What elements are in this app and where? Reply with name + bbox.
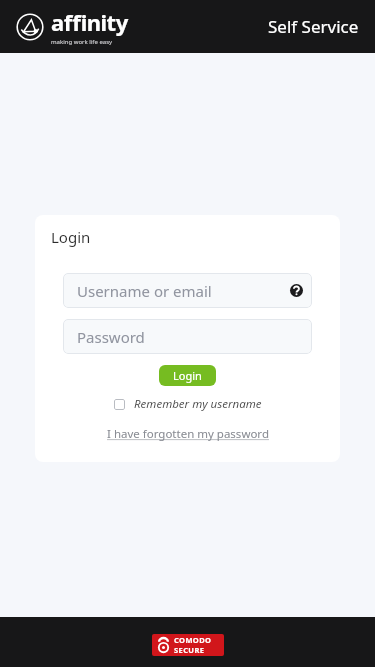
staticText: making work life easy [51, 38, 113, 46]
button[interactable]: Help [290, 284, 303, 297]
button[interactable]: Password [63, 319, 312, 354]
button[interactable]: Affinity home [16, 7, 128, 46]
button[interactable]: Comodo Secure [152, 634, 224, 656]
button[interactable]: Remember my username [114, 396, 262, 412]
staticText: I have forgotten my password [107, 426, 269, 442]
button[interactable]: Login [159, 365, 216, 386]
staticText: affinity [51, 7, 128, 37]
staticText: Remember my username [134, 396, 262, 412]
staticText: Username or email [77, 281, 212, 301]
staticText: Login [51, 227, 91, 247]
staticText: Login [173, 368, 202, 383]
staticText: COMODO [174, 635, 212, 645]
staticText: Password [77, 327, 145, 347]
staticText: Self Service [268, 15, 359, 38]
button[interactable]: Username or email [63, 273, 312, 308]
staticText: SECURE [174, 645, 205, 655]
button[interactable]: I have forgotten my password [107, 426, 269, 442]
